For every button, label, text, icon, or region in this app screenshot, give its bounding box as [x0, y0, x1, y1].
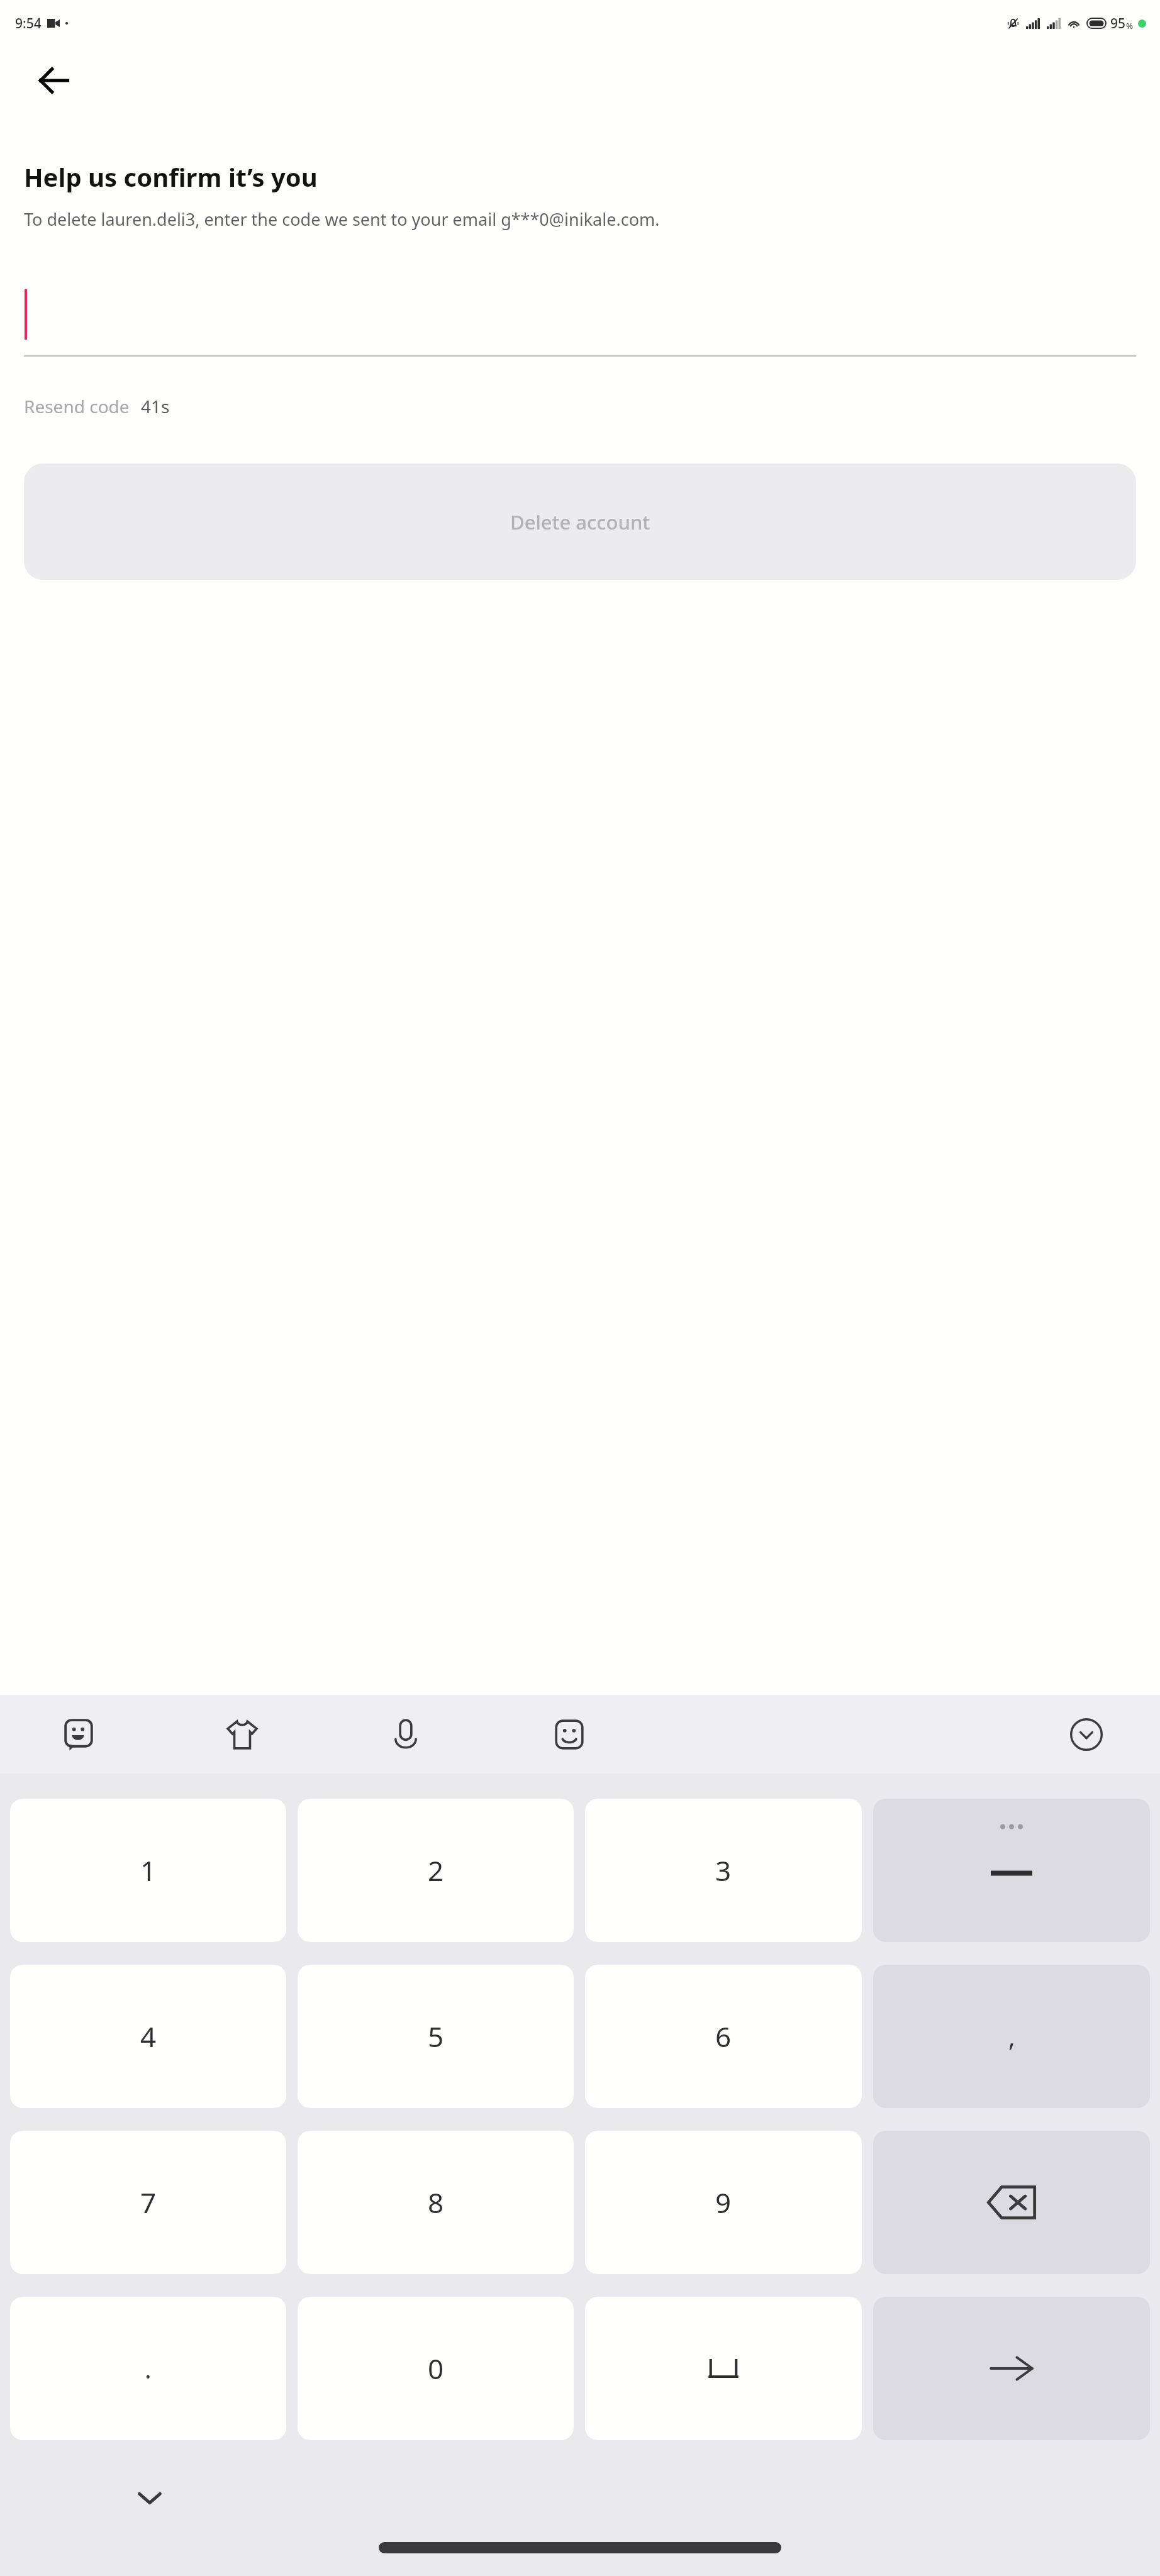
button[interactable]: 0 — [298, 2297, 574, 2440]
button[interactable]: 9 — [585, 2131, 862, 2274]
button[interactable]: Dash — [873, 1799, 1150, 1942]
button[interactable]: 7 — [10, 2131, 286, 2274]
staticText: 3 — [715, 1851, 732, 1889]
button[interactable]: 4 — [10, 1965, 286, 2108]
button[interactable]: 2 — [298, 1799, 574, 1942]
button[interactable]: . — [10, 2297, 286, 2440]
button[interactable]: Delete account — [24, 464, 1136, 580]
staticText: , — [1008, 2019, 1015, 2053]
button[interactable] — [24, 274, 1136, 355]
staticText: 9 — [715, 2184, 732, 2221]
staticText: 41s — [141, 394, 170, 418]
button[interactable]: 3 — [585, 1799, 862, 1942]
button[interactable]: Space — [585, 2297, 862, 2440]
button[interactable]: Voice input — [379, 1707, 433, 1762]
button[interactable]: 6 — [585, 1965, 862, 2108]
staticText: 4 — [140, 2018, 157, 2055]
staticText: 9:54 — [15, 14, 42, 33]
staticText: To delete lauren.deli3, enter the code w… — [24, 208, 660, 231]
button[interactable]: Stickers — [52, 1707, 106, 1762]
staticText: % — [1126, 20, 1134, 31]
staticText: 95 — [1110, 14, 1126, 33]
button[interactable]: Emoji — [542, 1707, 596, 1762]
staticText: 5 — [428, 2018, 444, 2055]
button[interactable]: , — [873, 1965, 1150, 2108]
button[interactable]: 5 — [298, 1965, 574, 2108]
button[interactable]: Resend code — [24, 394, 170, 418]
staticText: 1 — [140, 1851, 157, 1889]
button[interactable]: Enter — [873, 2297, 1150, 2440]
staticText: 2 — [428, 1851, 444, 1889]
button[interactable]: 1 — [10, 1799, 286, 1942]
staticText: Delete account — [510, 509, 650, 535]
button[interactable]: Collapse toolbar — [1059, 1707, 1113, 1762]
staticText: 8 — [428, 2184, 444, 2221]
staticText: . — [145, 2351, 152, 2385]
staticText: 7 — [140, 2184, 157, 2221]
staticText: Resend code — [24, 394, 130, 418]
button[interactable]: Backspace — [873, 2131, 1150, 2274]
staticText: Help us confirm it’s you — [24, 160, 318, 194]
button[interactable]: Hide keyboard — [120, 2468, 180, 2528]
staticText: 0 — [428, 2350, 444, 2387]
button[interactable]: Back — [28, 54, 81, 107]
button[interactable]: Themes — [215, 1707, 269, 1762]
staticText: 6 — [715, 2018, 732, 2055]
button[interactable]: 8 — [298, 2131, 574, 2274]
